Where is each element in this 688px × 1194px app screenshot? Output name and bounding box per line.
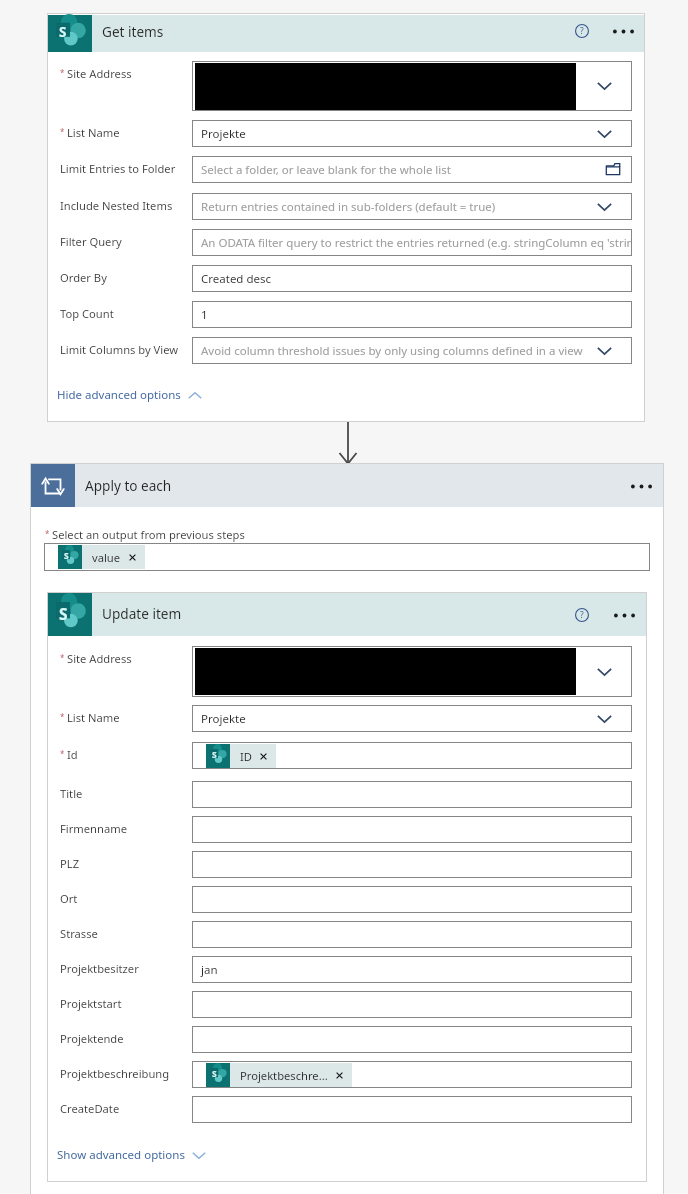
staticText: Projekte bbox=[201, 126, 246, 142]
staticText: * bbox=[45, 528, 50, 539]
staticText: Projektstart bbox=[60, 996, 122, 1011]
button[interactable] bbox=[192, 921, 632, 948]
staticText: Ort bbox=[60, 891, 78, 906]
staticText: Site Address bbox=[67, 651, 132, 666]
staticText: S bbox=[59, 23, 67, 41]
button[interactable]: S bbox=[206, 1063, 352, 1087]
staticText: Update item bbox=[102, 604, 182, 623]
staticText: Avoid column threshold issues by only us… bbox=[201, 343, 583, 359]
button[interactable]: Avoid column threshold issues by only us… bbox=[192, 337, 632, 364]
button[interactable]: jan bbox=[192, 956, 632, 983]
button[interactable]: S bbox=[192, 742, 632, 769]
button[interactable]: Created desc bbox=[192, 265, 632, 292]
button[interactable]: Projekte bbox=[192, 705, 632, 732]
staticText: PLZ bbox=[60, 856, 80, 871]
staticText: S bbox=[212, 1068, 217, 1080]
staticText: Show advanced options bbox=[57, 1147, 185, 1163]
staticText: Id bbox=[67, 747, 78, 762]
button[interactable] bbox=[192, 61, 632, 111]
staticText: ID bbox=[240, 749, 252, 764]
button[interactable]: Help bbox=[570, 603, 594, 627]
staticText: Limit Columns by View bbox=[60, 342, 179, 357]
staticText: Select a folder, or leave blank for the … bbox=[201, 162, 451, 178]
staticText: * bbox=[60, 67, 65, 78]
staticText: Include Nested Items bbox=[60, 198, 173, 213]
button[interactable]: 1 bbox=[192, 301, 632, 328]
staticText: * bbox=[60, 748, 65, 759]
button[interactable]: S bbox=[58, 545, 145, 569]
staticText: value bbox=[92, 550, 121, 565]
staticText: 1 bbox=[201, 307, 208, 323]
button[interactable]: Help bbox=[570, 19, 594, 43]
staticText: Get items bbox=[102, 22, 164, 41]
staticText: Return entries contained in sub-folders … bbox=[201, 199, 496, 215]
button[interactable]: Return entries contained in sub-folders … bbox=[192, 193, 632, 220]
button[interactable]: S bbox=[206, 744, 276, 768]
staticText: ? bbox=[580, 609, 584, 621]
staticText: Order By bbox=[60, 270, 107, 285]
staticText: CreateDate bbox=[60, 1101, 120, 1116]
button[interactable]: More commands bbox=[607, 19, 639, 43]
button[interactable] bbox=[192, 1026, 632, 1053]
staticText: Strasse bbox=[60, 926, 98, 941]
button[interactable]: S bbox=[44, 543, 650, 571]
button[interactable]: S bbox=[48, 593, 646, 636]
button[interactable] bbox=[192, 816, 632, 843]
button[interactable]: Apply to each bbox=[31, 464, 663, 507]
staticText: * bbox=[60, 126, 65, 137]
button[interactable] bbox=[192, 886, 632, 913]
button[interactable]: More commands bbox=[608, 603, 640, 627]
staticText: S bbox=[59, 603, 68, 624]
staticText: Title bbox=[60, 786, 83, 801]
staticText: S bbox=[64, 550, 69, 562]
button[interactable]: S bbox=[192, 1061, 632, 1088]
staticText: Filter Query bbox=[60, 234, 122, 249]
staticText: * bbox=[60, 711, 65, 722]
button[interactable] bbox=[192, 851, 632, 878]
staticText: S bbox=[212, 749, 217, 761]
button[interactable] bbox=[192, 1096, 632, 1123]
button[interactable]: S bbox=[48, 15, 644, 52]
button[interactable]: More commands bbox=[625, 474, 657, 498]
staticText: Firmenname bbox=[60, 821, 127, 836]
staticText: ? bbox=[580, 25, 584, 37]
staticText: Projekte bbox=[201, 711, 246, 727]
button[interactable]: Hide advanced options bbox=[57, 385, 202, 405]
staticText: Projektbeschre... bbox=[240, 1068, 328, 1083]
staticText: Hide advanced options bbox=[57, 387, 181, 403]
staticText: Apply to each bbox=[85, 476, 172, 495]
staticText: Top Count bbox=[60, 306, 114, 321]
staticText: jan bbox=[201, 962, 218, 978]
button[interactable]: Show advanced options bbox=[57, 1145, 206, 1165]
staticText: Limit Entries to Folder bbox=[60, 161, 176, 176]
staticText: Projektende bbox=[60, 1031, 124, 1046]
staticText: Site Address bbox=[67, 66, 132, 81]
button[interactable] bbox=[192, 991, 632, 1018]
staticText: * bbox=[60, 652, 65, 663]
staticText: An ODATA filter query to restrict the en… bbox=[201, 235, 632, 251]
button[interactable]: Projekte bbox=[192, 120, 632, 147]
button[interactable] bbox=[192, 781, 632, 808]
button[interactable]: An ODATA filter query to restrict the en… bbox=[192, 229, 632, 256]
staticText: List Name bbox=[67, 125, 120, 140]
staticText: Projektbeschreibung bbox=[60, 1066, 170, 1081]
button[interactable]: Select a folder, or leave blank for the … bbox=[192, 156, 632, 183]
staticText: Created desc bbox=[201, 271, 272, 287]
staticText: Select an output from previous steps bbox=[52, 527, 245, 542]
button[interactable] bbox=[192, 646, 632, 697]
staticText: Projektbesitzer bbox=[60, 961, 139, 976]
staticText: List Name bbox=[67, 710, 120, 725]
